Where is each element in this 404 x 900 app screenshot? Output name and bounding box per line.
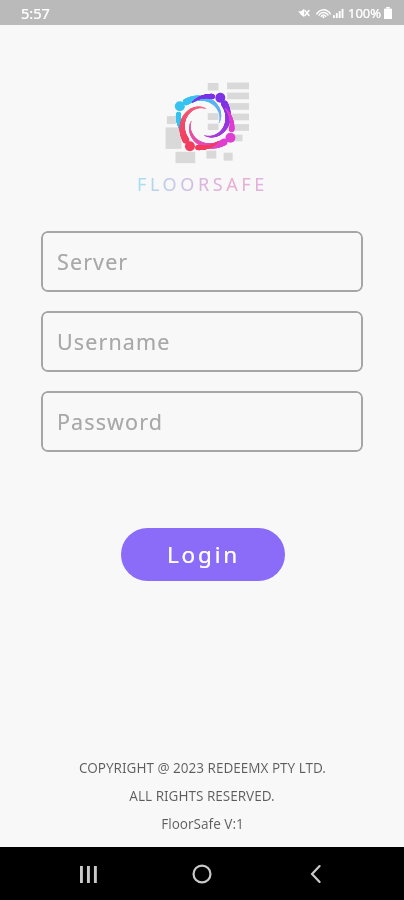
button[interactable]: Login <box>121 528 285 581</box>
button[interactable]: Home <box>176 848 228 900</box>
staticText: ALL RIGHTS RESERVED. <box>129 787 275 805</box>
button[interactable]: Back <box>290 848 342 900</box>
staticText: Login <box>167 539 240 570</box>
staticText: FLOORSAFE <box>137 172 268 197</box>
button[interactable]: Username <box>41 311 363 372</box>
staticText: 5:57 <box>21 3 50 23</box>
button[interactable]: Server <box>41 231 363 292</box>
staticText: COPYRIGHT @ 2023 REDEEMX PTY LTD. <box>79 759 326 777</box>
staticText: 100% <box>348 4 382 22</box>
staticText: Server <box>57 247 129 276</box>
staticText: Password <box>57 407 164 436</box>
staticText: FloorSafe V:1 <box>161 815 244 833</box>
button[interactable]: Recents <box>62 848 114 900</box>
button[interactable]: Password <box>41 391 363 452</box>
staticText: Username <box>57 327 171 356</box>
